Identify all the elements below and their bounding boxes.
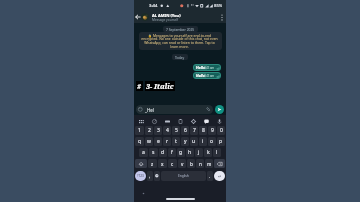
staticText: 2 (148, 127, 151, 134)
staticText: 6 (184, 127, 187, 134)
staticText: h (188, 149, 192, 156)
button[interactable]: Voice input (215, 117, 223, 125)
staticText: k (207, 149, 210, 156)
button[interactable]: . (207, 171, 213, 181)
button[interactable]: Back (134, 11, 141, 23)
button[interactable]: o (208, 137, 216, 146)
staticText: a (142, 149, 145, 156)
button[interactable]: g (177, 148, 185, 157)
staticText: z (151, 161, 154, 167)
staticText: t (175, 138, 177, 145)
button[interactable]: Clipboard (176, 117, 184, 125)
button[interactable]: p (217, 137, 225, 146)
button[interactable]: Emoji (154, 171, 160, 181)
staticText: f (171, 149, 173, 156)
button[interactable]: Today (175, 55, 185, 59)
button[interactable]: Send (215, 105, 224, 114)
staticText: ↵ (218, 174, 222, 179)
button[interactable]: Settings (189, 117, 197, 125)
button[interactable]: Hello (193, 72, 221, 79)
staticText: c (171, 161, 174, 167)
staticText: 3:43 am (204, 74, 215, 78)
staticText: y (184, 138, 187, 145)
button[interactable]: z (148, 159, 157, 168)
button[interactable]: v (178, 159, 186, 168)
button[interactable]: d (159, 148, 167, 157)
staticText: 85% (214, 3, 223, 9)
staticText: q (138, 138, 142, 145)
button[interactable]: j (195, 148, 203, 157)
button[interactable]: 9 (208, 126, 216, 135)
button[interactable]: h (186, 148, 194, 157)
staticText: Hello (196, 73, 205, 78)
button[interactable]: f (168, 148, 176, 157)
button[interactable]: 5 (172, 126, 180, 135)
button[interactable]: q (135, 137, 144, 146)
button[interactable]: w (145, 137, 153, 146)
staticText: s (152, 149, 155, 156)
button[interactable]: c (168, 159, 177, 168)
button[interactable]: 0 (217, 126, 225, 135)
staticText: , (149, 173, 151, 179)
button[interactable]: _Hel (138, 105, 211, 114)
button[interactable]: Backspace (214, 159, 225, 168)
staticText: 7 (193, 127, 196, 134)
button[interactable]: 🔒 Messages to yourself are end-to-end en… (141, 33, 220, 49)
button[interactable]: Enter (214, 171, 225, 181)
button[interactable]: , (147, 171, 153, 181)
button[interactable]: Search (150, 117, 158, 125)
button[interactable]: 1 (135, 126, 144, 135)
staticText: r (166, 138, 169, 145)
staticText: 3:43 am (204, 66, 215, 70)
staticText: l (216, 149, 218, 156)
button[interactable]: ?123 (135, 171, 146, 181)
button[interactable]: 6 (181, 126, 189, 135)
button[interactable]: s (149, 148, 158, 157)
button[interactable]: u (190, 137, 198, 146)
staticText: x (161, 161, 164, 167)
staticText: g (179, 149, 183, 156)
button[interactable]: Shift (135, 159, 147, 168)
button[interactable]: k (204, 148, 212, 157)
button[interactable]: More options (218, 11, 226, 23)
staticText: v (181, 161, 184, 167)
staticText: d (161, 149, 165, 156)
staticText: ?123 (137, 174, 144, 178)
staticText: i (202, 138, 204, 145)
button[interactable]: l (213, 148, 221, 157)
button[interactable]: n (196, 159, 204, 168)
staticText: 0 (220, 127, 223, 134)
staticText: e (157, 138, 160, 145)
button[interactable]: Stickers (202, 117, 210, 125)
staticText: . (209, 173, 211, 179)
button[interactable]: GIF (163, 117, 171, 125)
button[interactable]: 8 (199, 126, 207, 135)
button[interactable]: t (172, 137, 180, 146)
button[interactable]: b (187, 159, 195, 168)
staticText: m (207, 161, 212, 167)
button[interactable]: Keyboard settings (137, 117, 145, 125)
button[interactable]: 3 (154, 126, 162, 135)
staticText: AL AMIN (You) (152, 13, 181, 18)
button[interactable]: 2 (145, 126, 153, 135)
staticText: 3 (157, 127, 160, 134)
staticText: u (192, 138, 196, 145)
staticText: 5 (175, 127, 178, 134)
button[interactable]: 7 (190, 126, 198, 135)
button[interactable]: 7 September 2025 (166, 27, 195, 31)
button[interactable]: a (139, 148, 148, 157)
button[interactable]: Hello (193, 64, 221, 71)
staticText: 9 (211, 127, 214, 134)
button[interactable]: Profile photo (141, 13, 149, 21)
staticText: b (190, 161, 193, 167)
button[interactable]: English (161, 171, 206, 181)
button[interactable]: x (158, 159, 167, 168)
button[interactable]: i (199, 137, 207, 146)
staticText: # (137, 81, 142, 91)
button[interactable]: r (163, 137, 171, 146)
button[interactable]: y (181, 137, 189, 146)
button[interactable]: m (205, 159, 213, 168)
staticText: 1 (138, 127, 141, 134)
button[interactable]: 4 (163, 126, 171, 135)
button[interactable]: e (154, 137, 162, 146)
